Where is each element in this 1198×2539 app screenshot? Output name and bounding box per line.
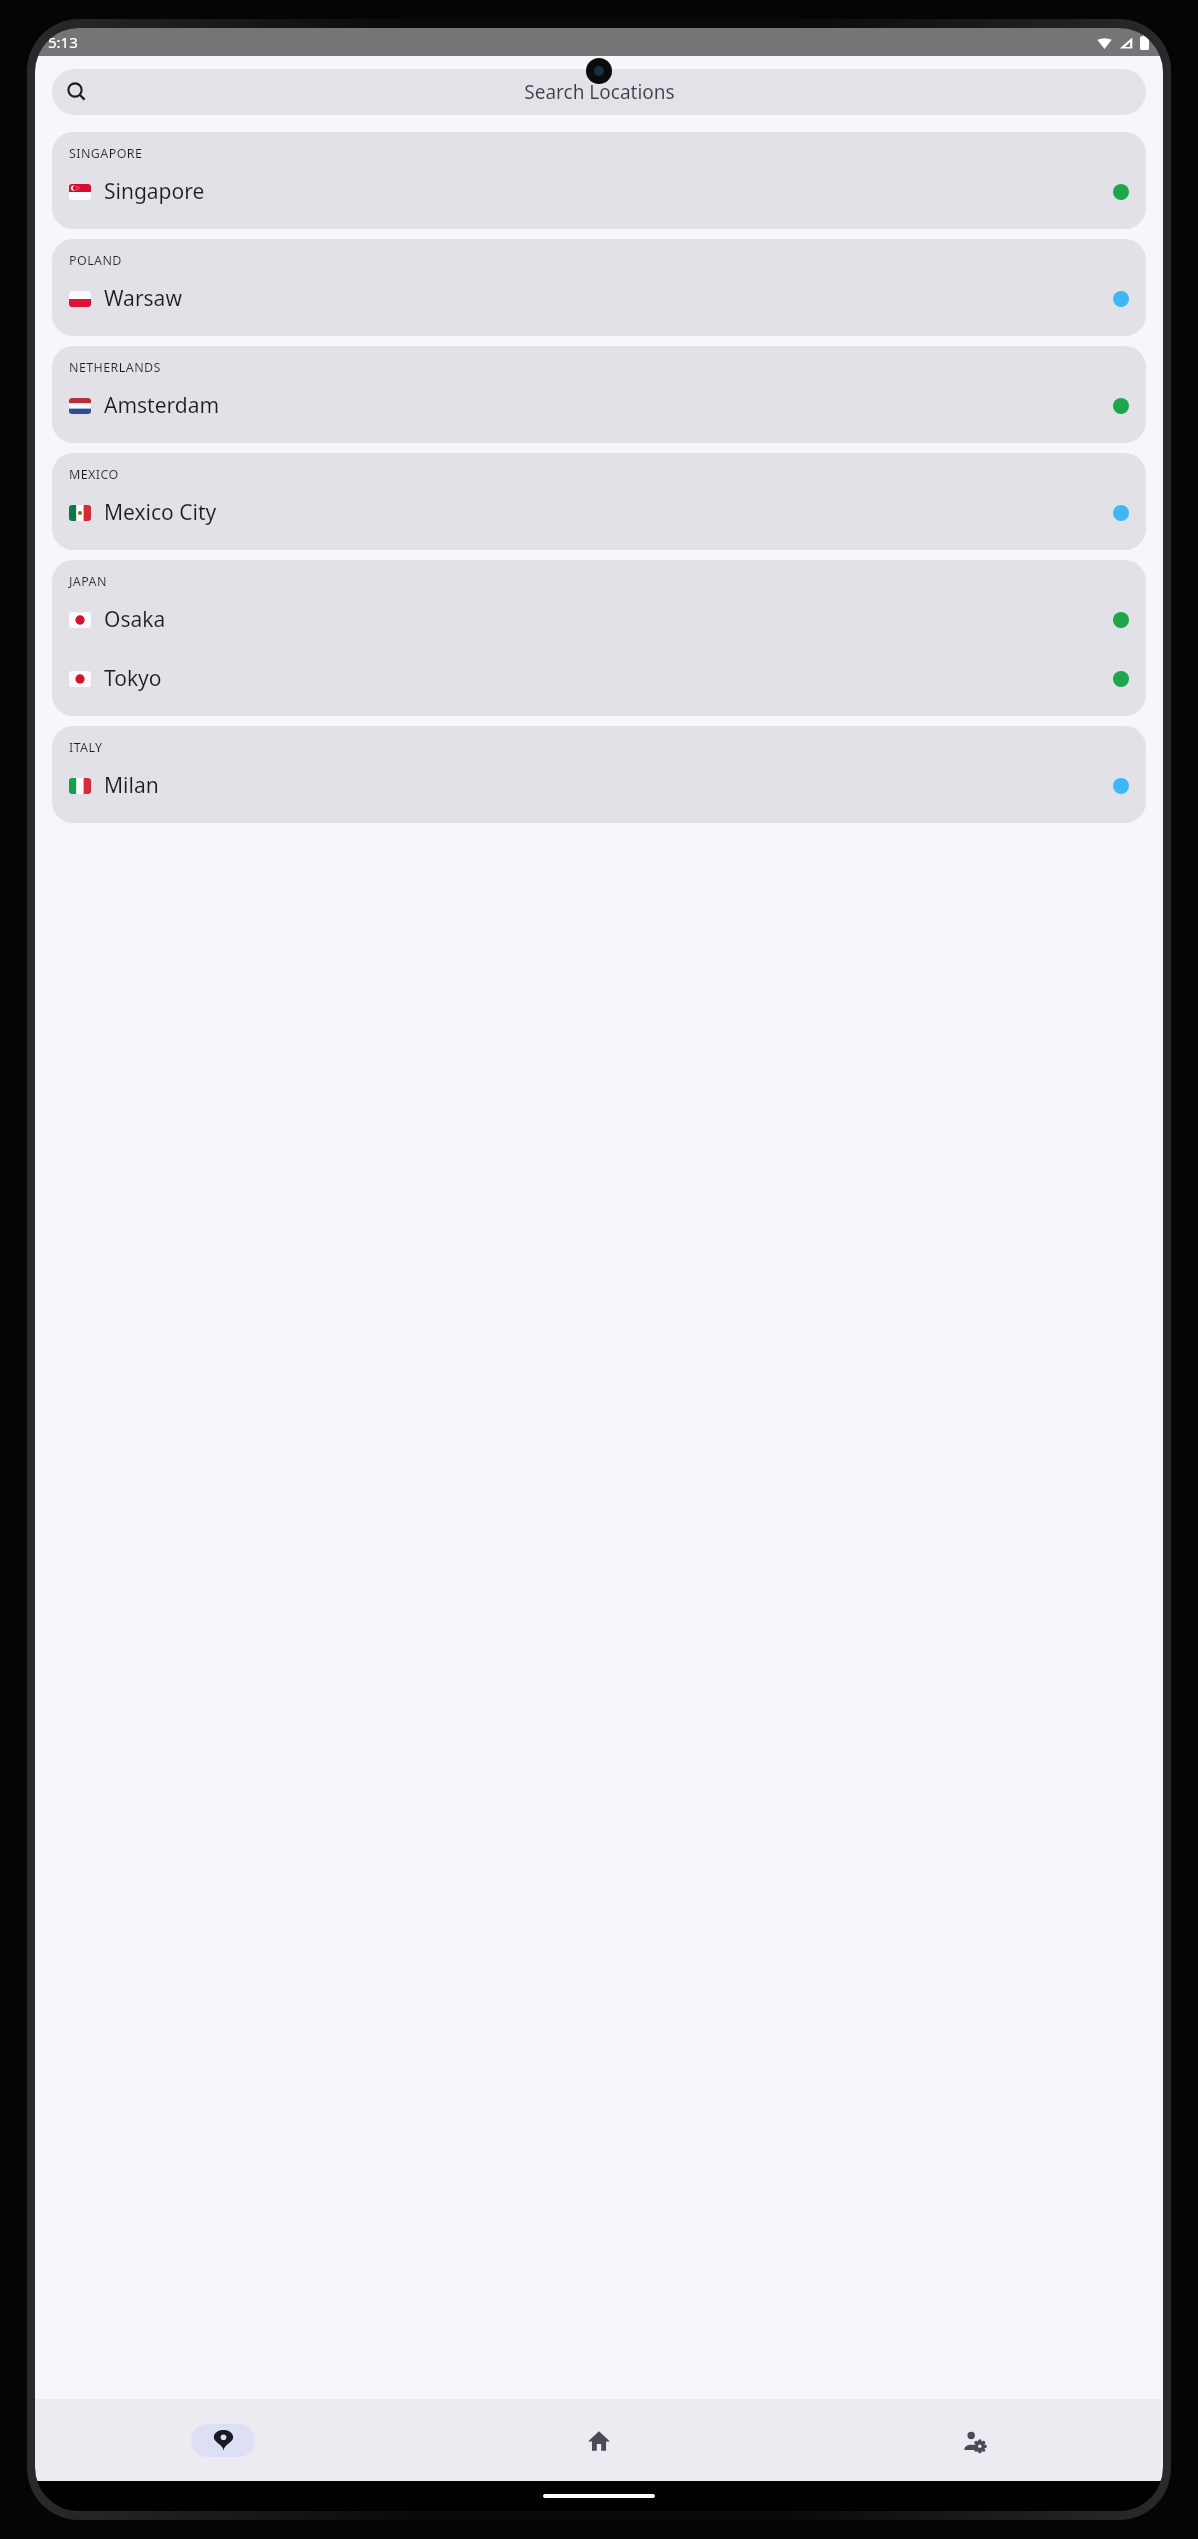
button[interactable]: Locations bbox=[191, 2424, 255, 2457]
button[interactable]: Osaka bbox=[69, 590, 1129, 649]
staticText: Osaka bbox=[104, 605, 166, 634]
button[interactable]: Mexico City bbox=[69, 483, 1129, 542]
staticText: POLAND bbox=[69, 252, 122, 269]
staticText: Singapore bbox=[104, 177, 205, 206]
button[interactable]: Manage accounts bbox=[943, 2424, 1007, 2457]
button[interactable]: Singapore bbox=[69, 162, 1129, 221]
staticText: ITALY bbox=[69, 739, 103, 756]
staticText: Tokyo bbox=[104, 664, 162, 693]
button[interactable]: Warsaw bbox=[69, 269, 1129, 328]
staticText: 5:13 bbox=[48, 32, 78, 52]
button[interactable]: ITALY bbox=[52, 726, 1146, 823]
button[interactable]: SINGAPORE bbox=[52, 132, 1146, 229]
staticText: JAPAN bbox=[69, 573, 107, 590]
button[interactable]: Amsterdam bbox=[69, 376, 1129, 435]
button[interactable]: Home bbox=[567, 2424, 631, 2457]
button[interactable]: Tokyo bbox=[69, 649, 1129, 708]
button[interactable]: JAPAN bbox=[52, 560, 1146, 716]
button[interactable]: Milan bbox=[69, 756, 1129, 815]
staticText: Warsaw bbox=[104, 284, 182, 313]
staticText: Milan bbox=[104, 771, 159, 800]
staticText: MEXICO bbox=[69, 466, 119, 483]
staticText: Mexico City bbox=[104, 498, 217, 527]
staticText: Search Locations bbox=[524, 79, 675, 105]
button[interactable]: Search Locations bbox=[52, 69, 1146, 115]
staticText: SINGAPORE bbox=[69, 145, 143, 162]
staticText: Amsterdam bbox=[104, 391, 220, 420]
button[interactable]: POLAND bbox=[52, 239, 1146, 336]
button[interactable]: NETHERLANDS bbox=[52, 346, 1146, 443]
button[interactable]: MEXICO bbox=[52, 453, 1146, 550]
staticText: NETHERLANDS bbox=[69, 359, 161, 376]
